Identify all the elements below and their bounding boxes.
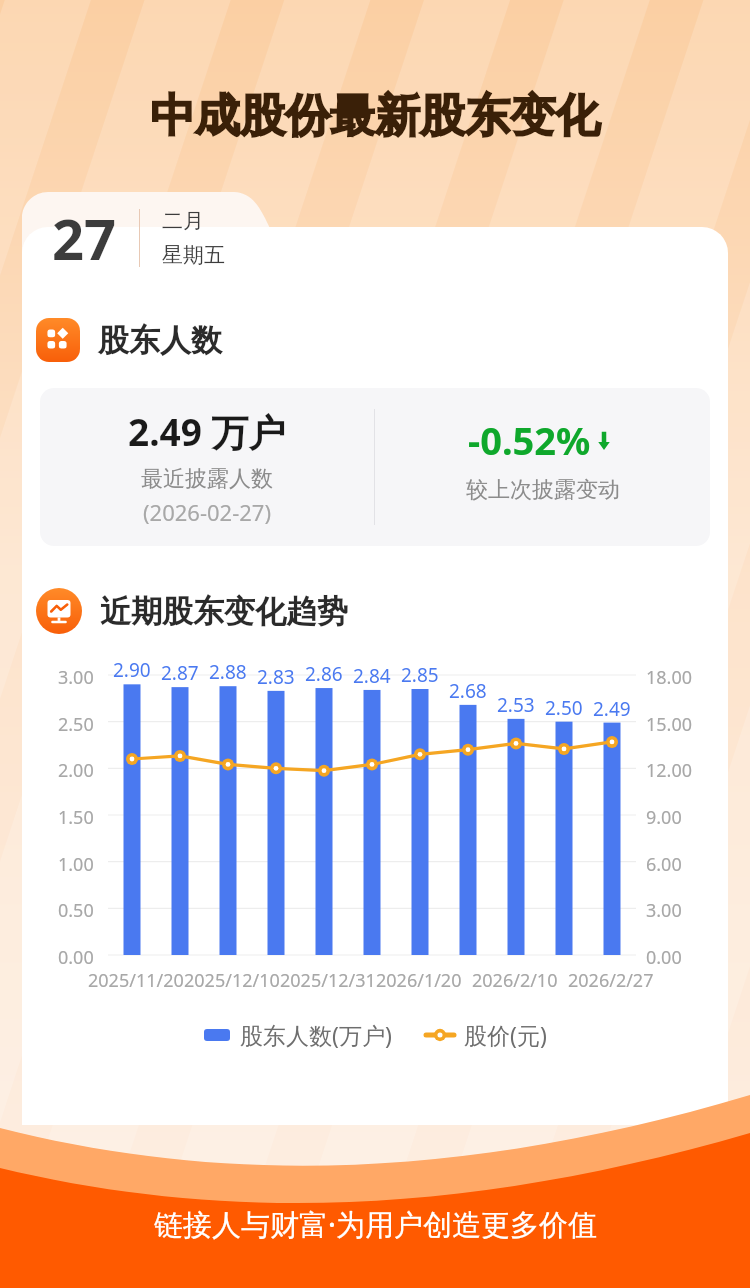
other: 股东人数 xyxy=(36,318,80,362)
staticText: 2.86 xyxy=(305,661,343,687)
staticText: 2.50 xyxy=(545,695,583,721)
staticText: 链接人与财富·为用户创造更多价值 xyxy=(154,1204,597,1244)
staticText: 2025/11/20 xyxy=(88,968,184,993)
staticText: 0.50 xyxy=(58,898,94,923)
staticText: 0.00 xyxy=(646,945,682,970)
staticText: 6.00 xyxy=(646,852,682,877)
staticText: 星期五 xyxy=(162,242,225,268)
staticText: 2.50 xyxy=(58,712,94,737)
staticText: 12.00 xyxy=(646,758,693,783)
staticText: (2026-02-27) xyxy=(143,497,272,527)
staticText: 股东人数 xyxy=(98,321,222,360)
button[interactable]: 股价(元) xyxy=(426,1019,547,1050)
staticText: 1.00 xyxy=(58,852,94,877)
staticText: 2026/1/20 xyxy=(376,968,462,993)
staticText: 近期股东变化趋势 xyxy=(100,592,348,631)
staticText: 2025/12/31 xyxy=(280,968,376,993)
staticText: 15.00 xyxy=(646,712,693,737)
button[interactable]: 股东人数 xyxy=(36,318,222,362)
staticText: 3.00 xyxy=(58,665,94,690)
button[interactable]: 2.49 万户 xyxy=(40,388,710,546)
staticText: 0.00 xyxy=(58,945,94,970)
staticText: 较上次披露变动 xyxy=(466,476,620,504)
button[interactable]: 3.00 xyxy=(0,656,750,1001)
staticText: 2.84 xyxy=(353,663,391,689)
staticText: 2.87 xyxy=(161,660,199,686)
staticText: 2026/2/10 xyxy=(472,968,558,993)
staticText: 股东人数(万户) xyxy=(240,1019,392,1050)
other: 近期股东变化趋势 xyxy=(36,588,82,634)
staticText: 2.49 xyxy=(593,696,631,722)
staticText: 2.90 xyxy=(113,657,151,683)
button[interactable]: 股东人数(万户) xyxy=(204,1019,392,1050)
staticText: 2.53 xyxy=(497,692,535,718)
staticText: 2.88 xyxy=(209,659,247,685)
staticText: 2026/2/27 xyxy=(568,968,654,993)
staticText: 3.00 xyxy=(646,898,682,923)
staticText: 2.68 xyxy=(449,678,487,704)
staticText: 2.00 xyxy=(58,758,94,783)
staticText: 18.00 xyxy=(646,665,693,690)
staticText: 27 xyxy=(52,200,117,276)
staticText: 最近披露人数 xyxy=(141,465,273,493)
staticText: 2.49 万户 xyxy=(128,406,286,457)
staticText: -0.52% xyxy=(468,414,591,466)
button[interactable]: 近期股东变化趋势 xyxy=(36,588,348,634)
staticText: 2.83 xyxy=(257,664,295,690)
staticText: 股价(元) xyxy=(464,1019,547,1050)
staticText: 2025/12/10 xyxy=(184,968,280,993)
staticText: 二月 xyxy=(162,208,204,234)
staticText: 9.00 xyxy=(646,805,682,830)
staticText: 中成股份最新股东变化 xyxy=(0,88,750,145)
staticText: 2.85 xyxy=(401,662,439,688)
staticText: 1.50 xyxy=(58,805,94,830)
